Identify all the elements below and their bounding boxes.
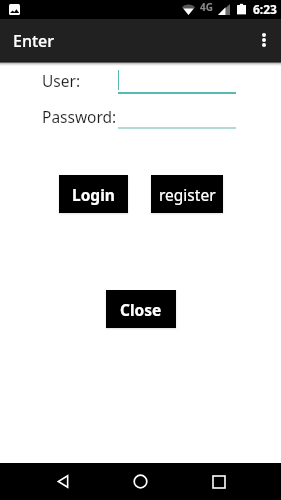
- button[interactable]: Login: [59, 175, 128, 213]
- button[interactable]: [118, 70, 236, 94]
- staticText: 6:23: [253, 1, 277, 17]
- button[interactable]: Home: [124, 463, 156, 500]
- staticText: Password:: [42, 106, 117, 127]
- button[interactable]: [118, 105, 236, 129]
- button[interactable]: Close: [106, 290, 176, 328]
- staticText: Enter: [13, 30, 55, 52]
- staticText: Login: [72, 184, 115, 205]
- staticText: Close: [120, 299, 162, 320]
- staticText: 4G: [200, 0, 213, 14]
- staticText: User:: [42, 70, 81, 91]
- button[interactable]: Back: [47, 463, 79, 500]
- button[interactable]: Recent apps: [203, 463, 235, 500]
- button[interactable]: More options: [247, 19, 281, 61]
- button[interactable]: register: [151, 175, 223, 213]
- staticText: register: [159, 184, 216, 205]
